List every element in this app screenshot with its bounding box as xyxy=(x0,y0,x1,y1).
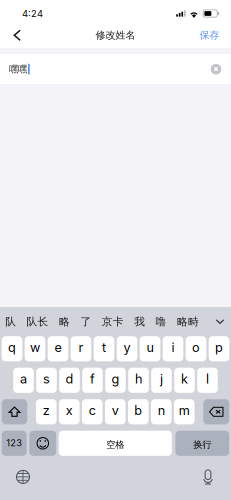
staticText: e xyxy=(54,340,61,355)
button[interactable]: Dictation xyxy=(193,466,231,488)
button[interactable]: l xyxy=(197,368,218,393)
staticText: 嘿嘿 xyxy=(9,63,27,75)
staticText: c xyxy=(89,403,96,418)
button[interactable]: 略 xyxy=(54,307,75,336)
button[interactable]: c xyxy=(82,399,103,424)
staticText: a xyxy=(20,371,27,387)
button[interactable]: w xyxy=(25,336,45,361)
button[interactable]: q xyxy=(2,336,22,361)
button[interactable]: 了 xyxy=(75,307,97,336)
button[interactable]: More candidates xyxy=(209,307,231,336)
button[interactable]: f xyxy=(82,368,103,393)
button[interactable]: h xyxy=(128,368,149,393)
button[interactable]: t xyxy=(94,336,114,361)
staticText: l xyxy=(206,371,209,387)
staticText: z xyxy=(43,403,50,418)
staticText: 换行 xyxy=(193,439,211,450)
staticText: 空格 xyxy=(106,439,124,450)
staticText: y xyxy=(123,340,130,355)
button[interactable]: u xyxy=(140,336,160,361)
staticText: 123 xyxy=(6,437,22,448)
button[interactable]: 噜 xyxy=(150,307,172,336)
staticText: v xyxy=(112,403,119,418)
button[interactable]: n xyxy=(151,399,171,424)
button[interactable]: r xyxy=(71,336,91,361)
button[interactable]: 队 xyxy=(0,307,21,336)
button[interactable]: 空格 xyxy=(59,431,172,456)
button[interactable]: Next keyboard xyxy=(0,466,38,488)
staticText: r xyxy=(78,340,83,355)
staticText: x xyxy=(66,403,73,418)
staticText: n xyxy=(158,403,165,418)
staticText: q xyxy=(8,340,16,355)
button[interactable]: 我 xyxy=(129,307,150,336)
staticText: w xyxy=(30,340,40,355)
staticText: s xyxy=(43,371,50,387)
button[interactable]: m xyxy=(174,399,194,424)
button[interactable]: b xyxy=(128,399,149,424)
button[interactable]: 京卡 xyxy=(97,307,129,336)
button[interactable]: z xyxy=(36,399,57,424)
button[interactable]: Clear text xyxy=(204,54,231,84)
button[interactable]: Delete xyxy=(203,399,229,424)
button[interactable]: k xyxy=(174,368,195,393)
button[interactable]: Back xyxy=(0,22,33,48)
staticText: m xyxy=(179,403,190,418)
staticText: j xyxy=(160,371,163,387)
button[interactable]: 保存 xyxy=(199,22,231,48)
button[interactable]: 123 xyxy=(2,431,27,456)
button[interactable]: p xyxy=(209,336,229,361)
button[interactable]: 换行 xyxy=(175,431,229,456)
button[interactable]: o xyxy=(186,336,206,361)
staticText: p xyxy=(215,340,223,355)
button[interactable]: y xyxy=(117,336,137,361)
button[interactable]: g xyxy=(105,368,126,393)
button[interactable]: Emoji xyxy=(29,431,56,456)
staticText: g xyxy=(111,371,119,387)
button[interactable]: 略畤 xyxy=(172,307,204,336)
staticText: 修改姓名 xyxy=(95,29,135,42)
staticText: 略畤 xyxy=(177,315,199,328)
staticText: 了 xyxy=(80,315,91,328)
staticText: t xyxy=(102,340,106,355)
button[interactable]: s xyxy=(36,368,57,393)
staticText: u xyxy=(146,340,153,355)
button[interactable]: x xyxy=(59,399,80,424)
button[interactable]: i xyxy=(163,336,183,361)
staticText: k xyxy=(181,371,188,387)
staticText: 略 xyxy=(59,315,70,328)
button[interactable]: j xyxy=(151,368,172,393)
staticText: b xyxy=(134,403,142,418)
staticText: 队长 xyxy=(27,315,49,328)
button[interactable]: Shift xyxy=(2,399,27,424)
staticText: 队 xyxy=(5,315,16,328)
button[interactable]: e xyxy=(48,336,68,361)
button[interactable]: d xyxy=(59,368,80,393)
button[interactable]: v xyxy=(105,399,126,424)
staticText: 保存 xyxy=(199,29,219,42)
staticText: 我 xyxy=(134,315,145,328)
staticText: d xyxy=(65,371,73,387)
staticText: o xyxy=(192,340,200,355)
staticText: 噜 xyxy=(156,315,167,328)
staticText: i xyxy=(171,340,174,355)
staticText: 4:24 xyxy=(22,8,43,19)
staticText: f xyxy=(90,371,95,387)
staticText: h xyxy=(135,371,142,387)
button[interactable]: 队长 xyxy=(21,307,54,336)
button[interactable]: a xyxy=(13,368,34,393)
staticText: 京卡 xyxy=(102,315,124,328)
